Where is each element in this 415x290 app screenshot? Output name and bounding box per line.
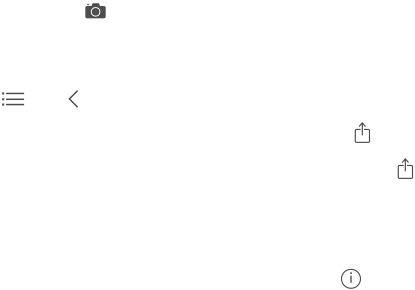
button[interactable]: Share <box>355 122 371 142</box>
button[interactable]: List <box>0 91 26 109</box>
button[interactable]: Info <box>341 269 362 290</box>
button[interactable]: Share <box>398 158 414 178</box>
button[interactable]: Camera <box>85 3 106 19</box>
button[interactable]: Back <box>68 89 80 109</box>
